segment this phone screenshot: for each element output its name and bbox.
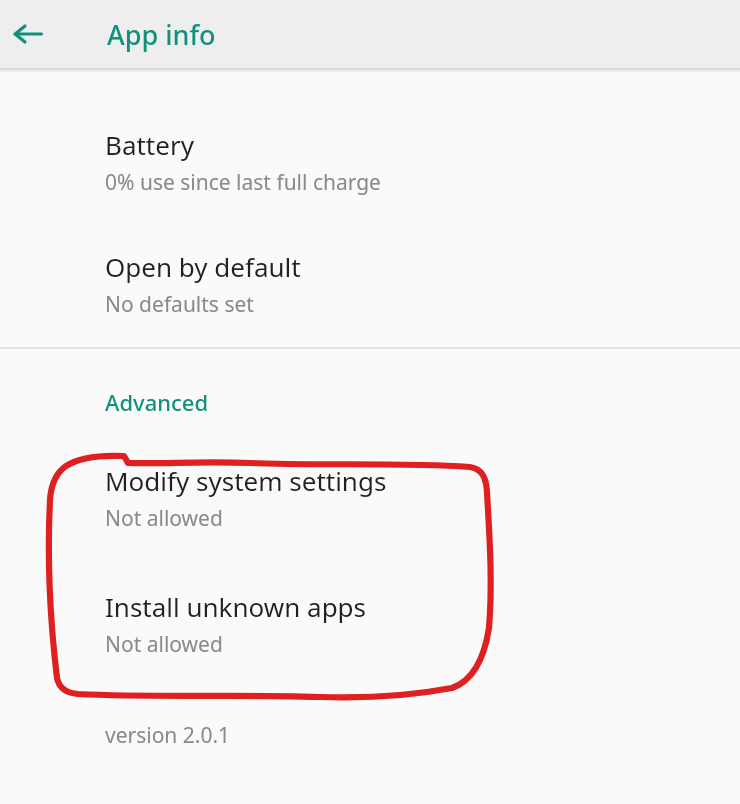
button[interactable]: Install unknown apps [0,589,740,659]
staticText: Advanced [105,387,209,417]
staticText: Open by default [105,249,301,284]
staticText: Modify system settings [105,463,387,498]
button[interactable]: Back [6,12,50,56]
staticText: version 2.0.1 [105,721,231,750]
staticText: No defaults set [105,290,254,319]
staticText: Not allowed [105,504,223,533]
staticText: Install unknown apps [105,589,367,624]
button[interactable]: Battery [0,127,740,197]
staticText: Not allowed [105,630,223,659]
staticText: App info [107,16,216,53]
staticText: Battery [105,127,194,162]
button[interactable]: Modify system settings [0,463,740,533]
staticText: 0% use since last full charge [105,168,381,197]
button[interactable]: Open by default [0,249,740,319]
